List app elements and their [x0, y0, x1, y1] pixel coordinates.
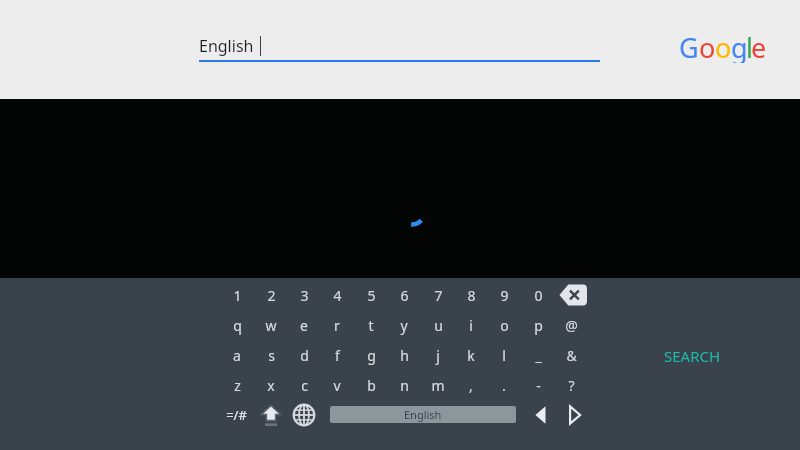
- button[interactable]: c: [288, 370, 320, 400]
- button[interactable]: ,: [455, 370, 487, 400]
- staticText: i: [469, 316, 473, 335]
- button[interactable]: _: [522, 340, 554, 370]
- button[interactable]: f: [321, 340, 353, 370]
- button[interactable]: d: [288, 340, 320, 370]
- staticText: k: [467, 346, 475, 365]
- staticText: =/#: [226, 406, 247, 424]
- button[interactable]: k: [455, 340, 487, 370]
- staticText: p: [534, 316, 543, 335]
- staticText: f: [335, 346, 340, 365]
- staticText: e: [751, 29, 767, 63]
- button[interactable]: Left: [527, 401, 555, 429]
- staticText: 1: [233, 286, 242, 305]
- staticText: .: [502, 376, 506, 395]
- button[interactable]: 4: [321, 280, 353, 310]
- button[interactable]: o: [488, 310, 520, 340]
- staticText: d: [300, 346, 309, 365]
- staticText: s: [268, 346, 275, 365]
- staticText: 8: [467, 286, 476, 305]
- staticText: 7: [434, 286, 443, 305]
- button[interactable]: Google: [678, 29, 758, 63]
- button[interactable]: Shift: [256, 401, 286, 429]
- button[interactable]: .: [488, 370, 520, 400]
- staticText: r: [334, 316, 340, 335]
- button[interactable]: SEARCH: [645, 341, 740, 371]
- button[interactable]: English: [199, 29, 600, 62]
- button[interactable]: v: [321, 370, 353, 400]
- button[interactable]: 2: [255, 280, 287, 310]
- staticText: w: [265, 316, 277, 335]
- button[interactable]: z: [221, 370, 253, 400]
- staticText: ?: [568, 376, 575, 395]
- button[interactable]: x: [255, 370, 287, 400]
- button[interactable]: 6: [388, 280, 420, 310]
- button[interactable]: 5: [355, 280, 387, 310]
- button[interactable]: b: [355, 370, 387, 400]
- staticText: 9: [500, 286, 509, 305]
- staticText: g: [731, 29, 748, 63]
- staticText: 0: [534, 286, 543, 305]
- staticText: ,: [469, 376, 473, 395]
- staticText: c: [301, 376, 308, 395]
- staticText: o: [715, 29, 732, 63]
- staticText: 5: [367, 286, 376, 305]
- button[interactable]: l: [488, 340, 520, 370]
- button[interactable]: s: [255, 340, 287, 370]
- button[interactable]: -: [522, 370, 554, 400]
- button[interactable]: t: [355, 310, 387, 340]
- staticText: z: [234, 376, 241, 395]
- staticText: 3: [300, 286, 309, 305]
- button[interactable]: 1: [221, 280, 253, 310]
- button[interactable]: e: [288, 310, 320, 340]
- button[interactable]: q: [221, 310, 253, 340]
- button[interactable]: 7: [422, 280, 454, 310]
- button[interactable]: y: [388, 310, 420, 340]
- button[interactable]: ?: [555, 370, 587, 400]
- staticText: y: [400, 316, 408, 335]
- staticText: o: [699, 29, 716, 63]
- button[interactable]: 0: [522, 280, 554, 310]
- button[interactable]: j: [422, 340, 454, 370]
- button[interactable]: Right: [560, 401, 588, 429]
- button[interactable]: Backspace: [554, 282, 588, 308]
- staticText: l: [502, 346, 506, 365]
- staticText: SEARCH: [664, 346, 721, 366]
- staticText: &: [566, 346, 577, 365]
- staticText: G: [679, 29, 699, 63]
- staticText: e: [300, 316, 308, 335]
- staticText: 2: [267, 286, 276, 305]
- staticText: u: [434, 316, 443, 335]
- staticText: _: [535, 346, 542, 365]
- button[interactable]: Change language: [290, 401, 318, 429]
- button[interactable]: p: [522, 310, 554, 340]
- button[interactable]: 3: [288, 280, 320, 310]
- button[interactable]: @: [555, 310, 587, 340]
- staticText: m: [431, 376, 445, 395]
- button[interactable]: u: [422, 310, 454, 340]
- staticText: 6: [400, 286, 409, 305]
- staticText: h: [400, 346, 409, 365]
- staticText: v: [333, 376, 341, 395]
- button[interactable]: i: [455, 310, 487, 340]
- staticText: b: [367, 376, 376, 395]
- button[interactable]: m: [422, 370, 454, 400]
- button[interactable]: r: [321, 310, 353, 340]
- button[interactable]: English: [330, 406, 516, 423]
- button[interactable]: =/#: [220, 400, 252, 430]
- staticText: English: [404, 407, 442, 422]
- button[interactable]: &: [555, 340, 587, 370]
- button[interactable]: 8: [455, 280, 487, 310]
- button[interactable]: h: [388, 340, 420, 370]
- button[interactable]: g: [355, 340, 387, 370]
- staticText: a: [233, 346, 241, 365]
- staticText: x: [267, 376, 275, 395]
- staticText: n: [400, 376, 409, 395]
- button[interactable]: 9: [488, 280, 520, 310]
- button[interactable]: a: [221, 340, 253, 370]
- staticText: q: [233, 316, 242, 335]
- button[interactable]: w: [255, 310, 287, 340]
- staticText: @: [565, 316, 578, 335]
- button[interactable]: n: [388, 370, 420, 400]
- staticText: l: [746, 29, 753, 63]
- staticText: g: [367, 346, 376, 365]
